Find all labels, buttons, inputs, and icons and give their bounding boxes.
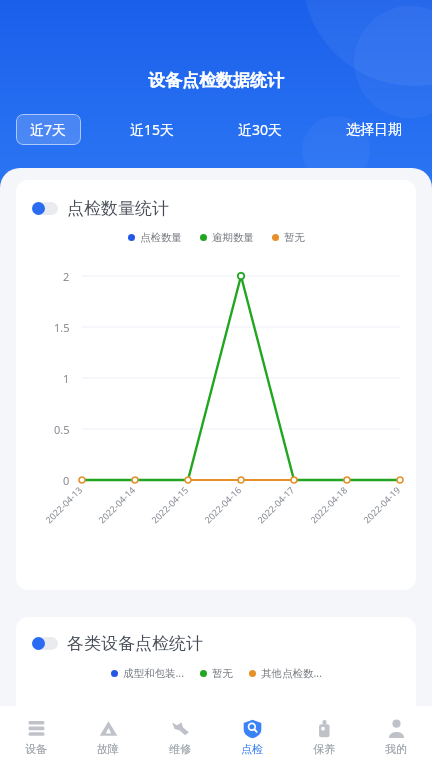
staticText: 近15天 bbox=[130, 120, 175, 139]
staticText: 我的 bbox=[385, 742, 407, 756]
button[interactable]: 保养 bbox=[288, 718, 360, 756]
button[interactable]: 近30天 bbox=[224, 113, 297, 146]
staticText: 点检数量 bbox=[140, 231, 182, 244]
button[interactable]: 维修 bbox=[144, 718, 216, 756]
button[interactable]: 近7天 bbox=[16, 114, 81, 145]
staticText: 逾期数量 bbox=[212, 231, 254, 244]
button[interactable]: 故障 bbox=[72, 718, 144, 756]
staticText: 成型和包装... bbox=[123, 666, 184, 680]
staticText: 设备点检数据统计 bbox=[148, 70, 284, 91]
staticText: 设备 bbox=[25, 742, 47, 756]
button[interactable]: 点检 bbox=[216, 718, 288, 756]
staticText: 近7天 bbox=[30, 120, 67, 139]
staticText: 选择日期 bbox=[346, 121, 402, 139]
button[interactable]: 选择日期 bbox=[332, 114, 416, 146]
staticText: 故障 bbox=[97, 742, 119, 756]
staticText: 暂无 bbox=[212, 667, 233, 680]
staticText: 保养 bbox=[313, 742, 335, 756]
button[interactable]: 近15天 bbox=[116, 113, 189, 146]
button[interactable]: 我的 bbox=[360, 718, 432, 756]
staticText: 点检 bbox=[241, 742, 263, 756]
staticText: 各类设备点检统计 bbox=[67, 633, 203, 654]
staticText: 维修 bbox=[169, 742, 191, 756]
staticText: 暂无 bbox=[284, 231, 305, 244]
button[interactable]: 设备 bbox=[0, 718, 72, 756]
staticText: 点检数量统计 bbox=[67, 198, 169, 219]
staticText: 其他点检数... bbox=[261, 666, 322, 680]
staticText: 近30天 bbox=[238, 120, 283, 139]
